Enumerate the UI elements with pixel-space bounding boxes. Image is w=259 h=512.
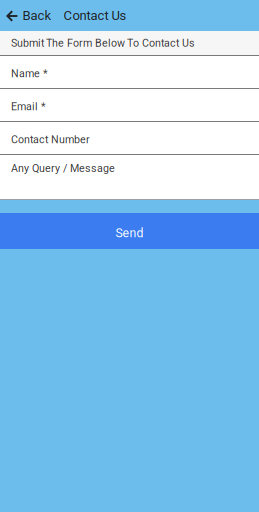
- staticText: Contact Number: [11, 133, 90, 146]
- staticText: Email *: [11, 100, 46, 113]
- staticText: Name *: [11, 67, 48, 80]
- staticText: Contact Us: [63, 8, 126, 23]
- button[interactable]: Any Query / Message: [0, 155, 259, 199]
- button[interactable]: Send: [0, 213, 259, 249]
- button[interactable]: Email *: [0, 89, 259, 122]
- staticText: Send: [115, 226, 143, 240]
- button[interactable]: Contact Number: [0, 122, 259, 155]
- button[interactable]: Name *: [0, 56, 259, 89]
- staticText: Submit The Form Below To Contact Us: [11, 37, 195, 49]
- staticText: Back: [22, 8, 51, 23]
- staticText: Any Query / Message: [11, 162, 115, 174]
- button[interactable]: Back: [0, 0, 58, 31]
